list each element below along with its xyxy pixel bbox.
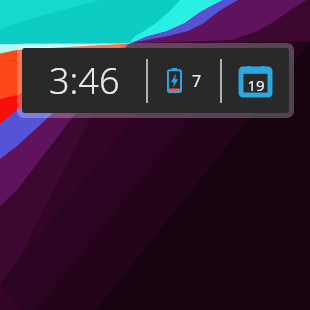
staticText: 19 bbox=[247, 75, 265, 95]
button[interactable]: 3:46 bbox=[22, 48, 289, 113]
staticText: 3:46 bbox=[49, 56, 120, 105]
staticText: 7 bbox=[192, 70, 202, 92]
